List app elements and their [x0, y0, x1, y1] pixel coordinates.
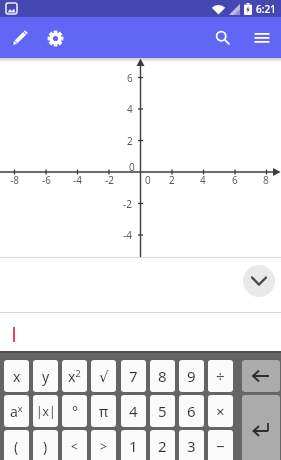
staticText: -4	[123, 228, 132, 242]
staticText: )	[43, 437, 48, 456]
button[interactable]: −	[208, 430, 233, 460]
staticText: ÷	[216, 366, 225, 386]
button[interactable]: √	[91, 360, 116, 392]
staticText: <	[71, 438, 78, 454]
staticText: 1	[129, 436, 138, 456]
button[interactable]: °	[62, 395, 87, 427]
staticText: π	[99, 402, 109, 421]
button[interactable]: 5	[150, 395, 175, 427]
button[interactable]: ×	[208, 395, 233, 427]
staticText: y	[42, 367, 50, 386]
staticText: 4	[127, 102, 133, 116]
button[interactable]	[211, 26, 235, 50]
button[interactable]: |x|	[33, 395, 58, 427]
button[interactable]	[250, 26, 274, 50]
button[interactable]: x2	[62, 360, 87, 392]
staticText: 3	[187, 436, 196, 456]
button[interactable]: <	[62, 430, 87, 460]
staticText: 2	[127, 134, 133, 148]
button[interactable]: )	[33, 430, 58, 460]
button[interactable]	[242, 360, 280, 392]
staticText: x	[13, 367, 21, 386]
staticText: 6	[187, 401, 196, 421]
staticText: 7	[129, 366, 138, 386]
button[interactable]: y	[33, 360, 58, 392]
staticText: 4	[129, 401, 138, 421]
staticText: x2	[68, 367, 81, 386]
button[interactable]: >	[91, 430, 116, 460]
staticText: 6	[232, 173, 238, 187]
staticText: |x|	[36, 403, 56, 419]
staticText: 0	[145, 173, 151, 187]
staticText: -8	[10, 173, 19, 187]
staticText: 2	[158, 436, 167, 456]
staticText: 6:21	[256, 2, 276, 16]
button[interactable]: 7	[121, 360, 146, 392]
button[interactable]: 4	[121, 395, 146, 427]
button[interactable]: 3	[179, 430, 204, 460]
staticText: ×	[216, 401, 225, 421]
staticText: −	[216, 436, 225, 456]
staticText: 0	[129, 160, 135, 174]
staticText: 8	[263, 173, 269, 187]
button[interactable]: ax	[4, 395, 29, 427]
staticText: 9	[187, 366, 196, 386]
staticText: -6	[42, 173, 51, 187]
button[interactable]: 8	[150, 360, 175, 392]
staticText: 2	[169, 173, 175, 187]
button[interactable]	[8, 26, 32, 50]
button[interactable]	[43, 26, 67, 50]
button[interactable]: (	[4, 430, 29, 460]
button[interactable]: 9	[179, 360, 204, 392]
button[interactable]: x	[4, 360, 29, 392]
staticText: -4	[73, 173, 82, 187]
button[interactable]	[242, 395, 280, 460]
staticText: °	[72, 402, 78, 421]
staticText: -2	[105, 173, 114, 187]
button[interactable]: ÷	[208, 360, 233, 392]
staticText: -2	[123, 197, 132, 211]
staticText: (	[14, 437, 19, 456]
staticText: 4	[200, 173, 206, 187]
staticText: ax	[10, 402, 23, 421]
staticText: 6	[127, 71, 133, 85]
staticText: √	[99, 368, 109, 385]
button[interactable]: 2	[150, 430, 175, 460]
staticText: 5	[158, 401, 167, 421]
button[interactable]: 1	[121, 430, 146, 460]
button[interactable]: π	[91, 395, 116, 427]
staticText: 8	[158, 366, 167, 386]
staticText: >	[100, 438, 107, 454]
button[interactable]: 6	[179, 395, 204, 427]
button[interactable]	[243, 265, 275, 297]
